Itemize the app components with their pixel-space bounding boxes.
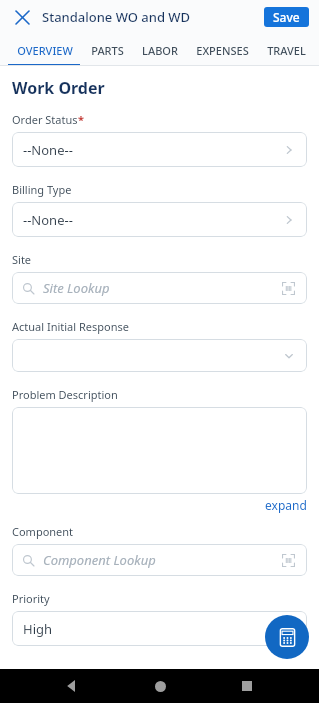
button[interactable]: Scan barcode	[279, 279, 297, 297]
staticText: TRAVEL	[267, 43, 306, 58]
button[interactable]: OVERVIEW	[8, 37, 82, 64]
staticText: Actual Initial Response	[12, 319, 129, 334]
button[interactable]: PARTS	[82, 37, 133, 64]
button[interactable]	[12, 407, 307, 494]
button[interactable]: Home	[145, 671, 175, 701]
staticText: expand	[265, 497, 307, 513]
staticText: LABOR	[142, 43, 178, 58]
staticText: Work Order	[12, 77, 105, 99]
staticText: Standalone WO and WD	[42, 8, 191, 26]
button[interactable]: expand	[265, 497, 307, 513]
staticText: Component Lookup	[43, 551, 156, 569]
staticText: Component	[12, 524, 74, 539]
button[interactable]: Calculator	[265, 615, 309, 659]
button[interactable]: Scan barcode	[279, 551, 297, 569]
button[interactable]: Save	[264, 7, 309, 27]
staticText: Save	[273, 9, 300, 25]
staticText: Problem Description	[12, 387, 118, 402]
button[interactable]: Back	[57, 671, 87, 701]
button[interactable]: Component Lookup	[12, 544, 307, 576]
staticText: Site	[12, 252, 32, 267]
button[interactable]: Recent apps	[232, 671, 262, 701]
staticText: OVERVIEW	[17, 43, 73, 58]
button[interactable]: --None--	[12, 132, 307, 167]
button[interactable]: EXPENSES	[187, 37, 258, 64]
button[interactable]: High	[12, 611, 307, 646]
staticText: Billing Type	[12, 182, 72, 197]
staticText: High	[23, 620, 53, 638]
staticText: --None--	[23, 141, 73, 159]
staticText: Site Lookup	[43, 279, 110, 297]
button[interactable]: Close	[10, 5, 34, 29]
button[interactable]: --None--	[12, 202, 307, 237]
staticText: PARTS	[91, 43, 124, 58]
button[interactable]	[12, 339, 307, 372]
button[interactable]: LABOR	[133, 37, 187, 64]
staticText: Priority	[12, 591, 50, 606]
button[interactable]: Site Lookup	[12, 272, 307, 304]
staticText: Order Status	[12, 112, 78, 127]
staticText: EXPENSES	[196, 43, 249, 58]
staticText: *	[78, 112, 84, 127]
button[interactable]: TRAVEL	[258, 37, 315, 64]
staticText: --None--	[23, 211, 73, 229]
